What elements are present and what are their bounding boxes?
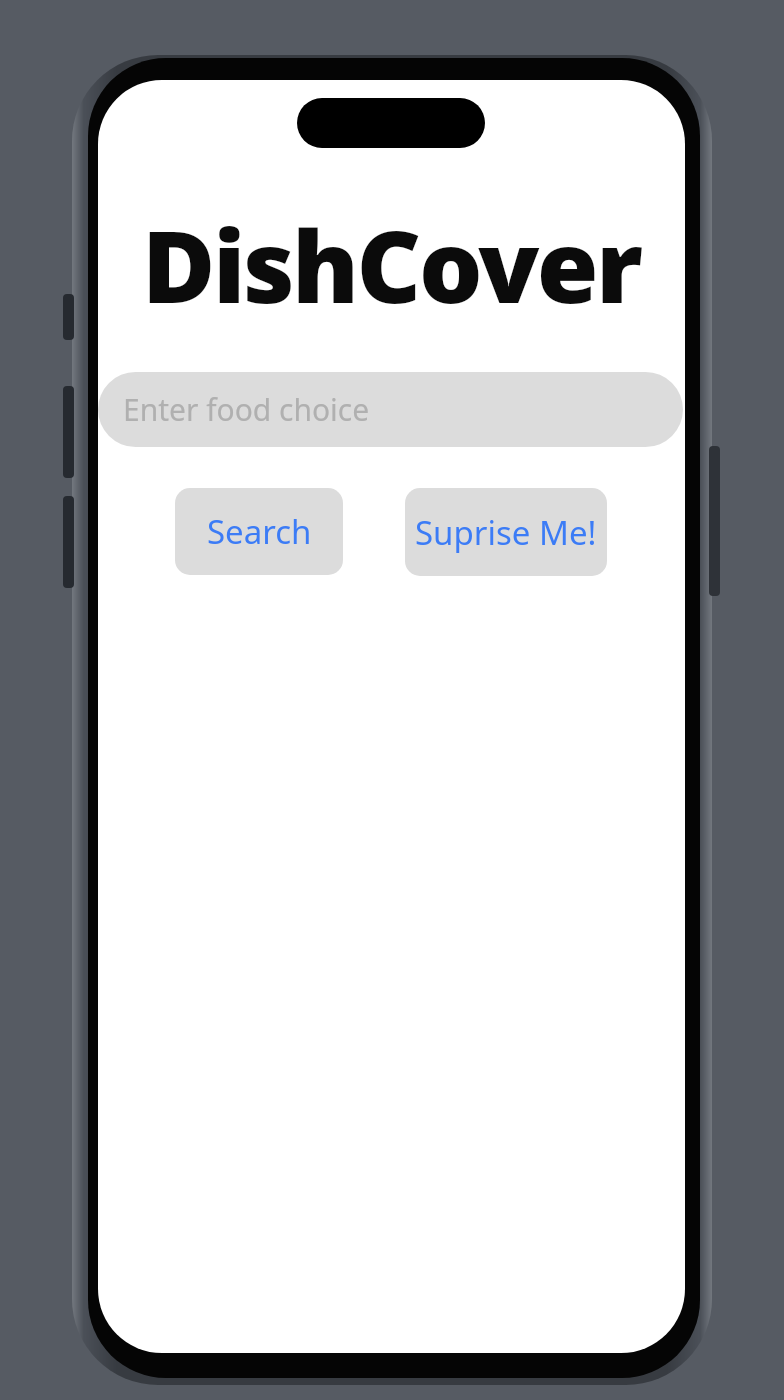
staticText: Enter food choice xyxy=(123,389,370,430)
staticText: Suprise Me! xyxy=(415,510,597,555)
button[interactable]: Suprise Me! xyxy=(405,488,607,576)
button[interactable]: Search xyxy=(175,488,343,575)
staticText: DishCovery xyxy=(142,196,642,320)
button[interactable]: Enter food choice xyxy=(98,372,683,447)
staticText: Search xyxy=(207,509,312,554)
